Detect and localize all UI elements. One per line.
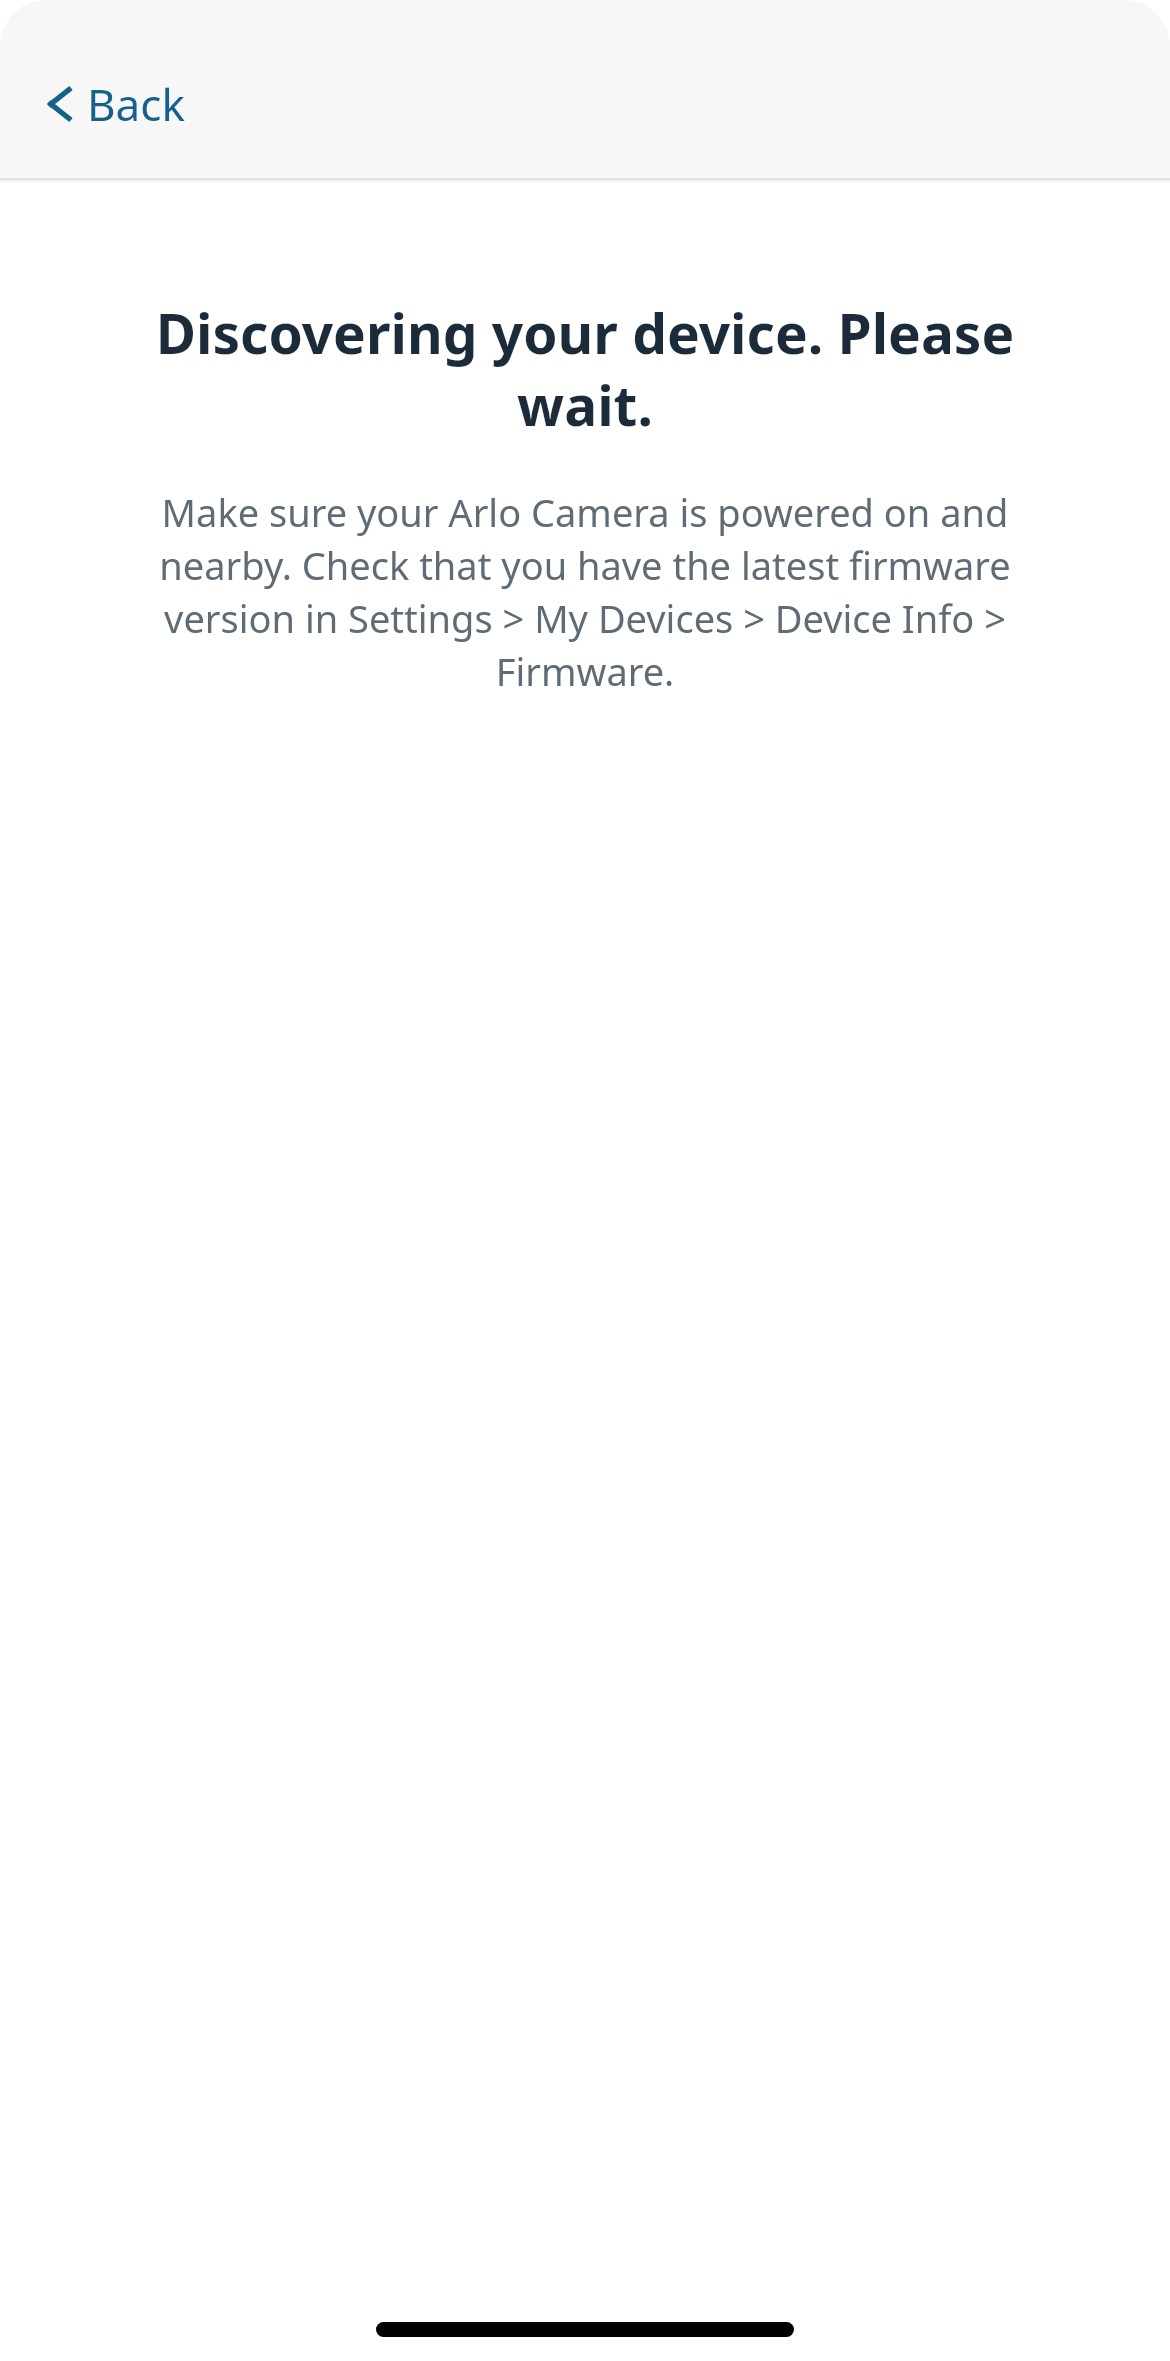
staticText: Discovering your device. Please wait.: [118, 295, 1052, 442]
staticText: Make sure your Arlo Camera is powered on…: [118, 486, 1052, 697]
other: Back: [46, 80, 74, 128]
staticText: Back: [87, 74, 185, 134]
button[interactable]: Back: [36, 68, 195, 140]
